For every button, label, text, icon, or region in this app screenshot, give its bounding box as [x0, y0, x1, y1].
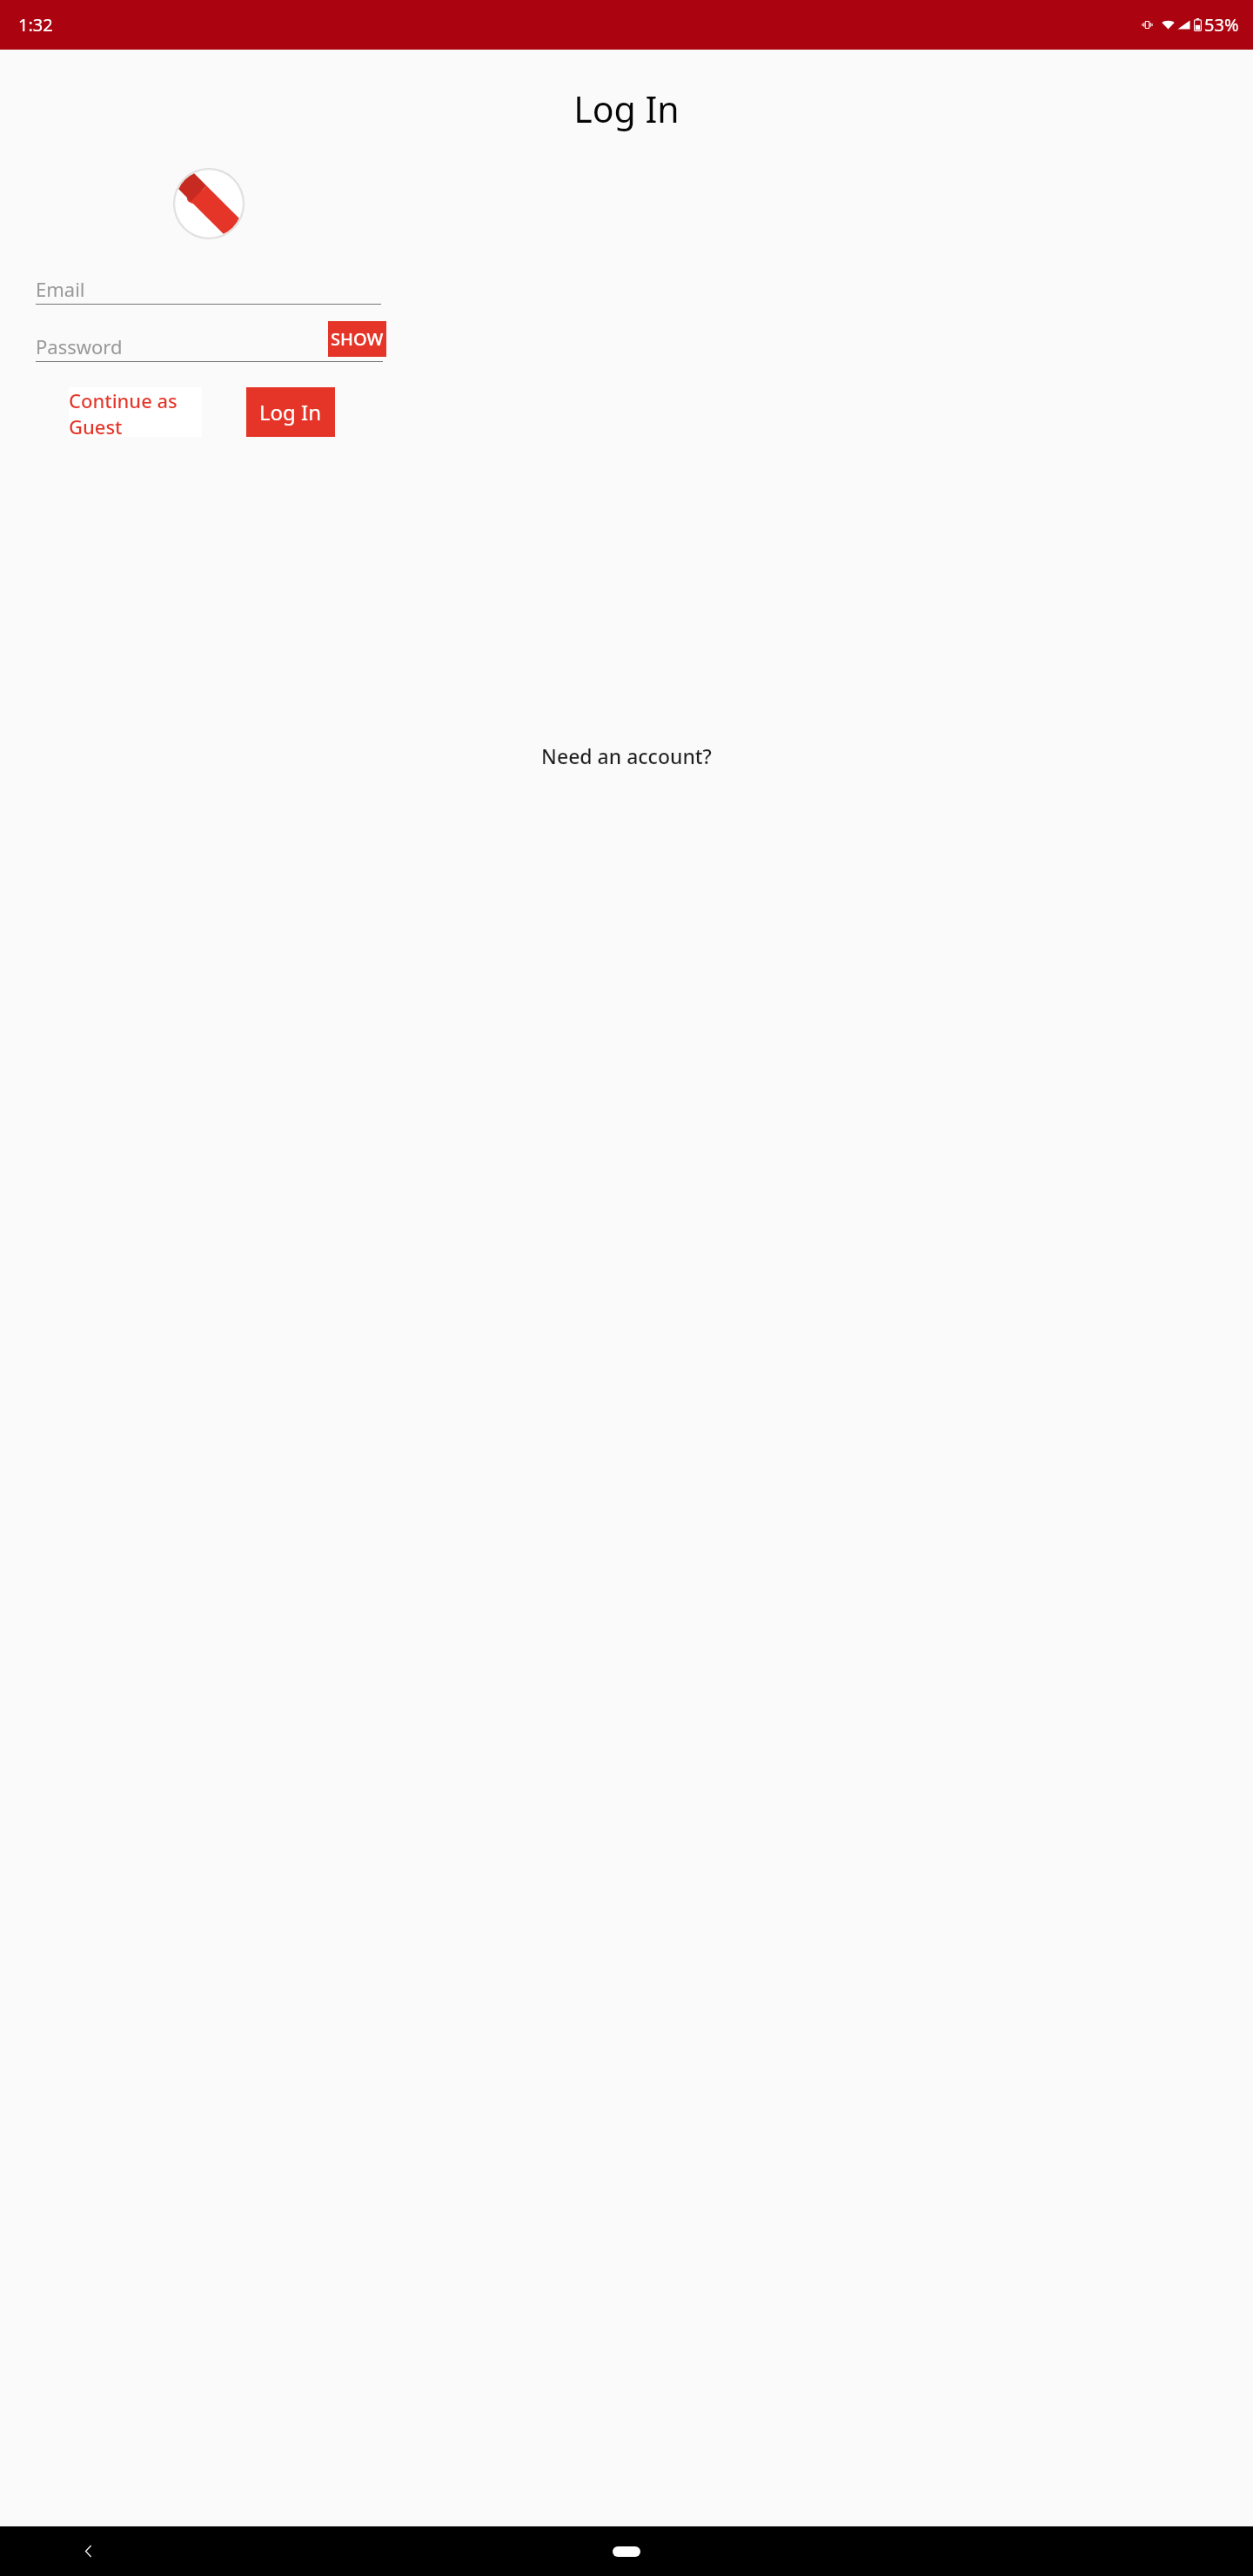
button[interactable]: Home [600, 2535, 653, 2567]
button[interactable]: Email [36, 272, 381, 305]
staticText: Password [36, 333, 123, 359]
button[interactable]: SHOW [328, 321, 386, 357]
staticText: SHOW [331, 327, 384, 351]
staticText: Email [36, 276, 85, 302]
button[interactable]: Log In [246, 387, 335, 437]
staticText: Log In [259, 398, 322, 426]
staticText: 1:32 [18, 13, 53, 37]
staticText: Need an account? [541, 742, 712, 768]
staticText: Log In [0, 84, 1253, 133]
button[interactable]: Back [72, 2535, 104, 2567]
button[interactable]: Need an account? [0, 742, 1253, 768]
button[interactable]: Password [36, 330, 383, 362]
staticText: Continue as Guest [69, 387, 202, 437]
button[interactable]: Continue as Guest [69, 387, 202, 437]
staticText: 53% [1204, 13, 1239, 37]
